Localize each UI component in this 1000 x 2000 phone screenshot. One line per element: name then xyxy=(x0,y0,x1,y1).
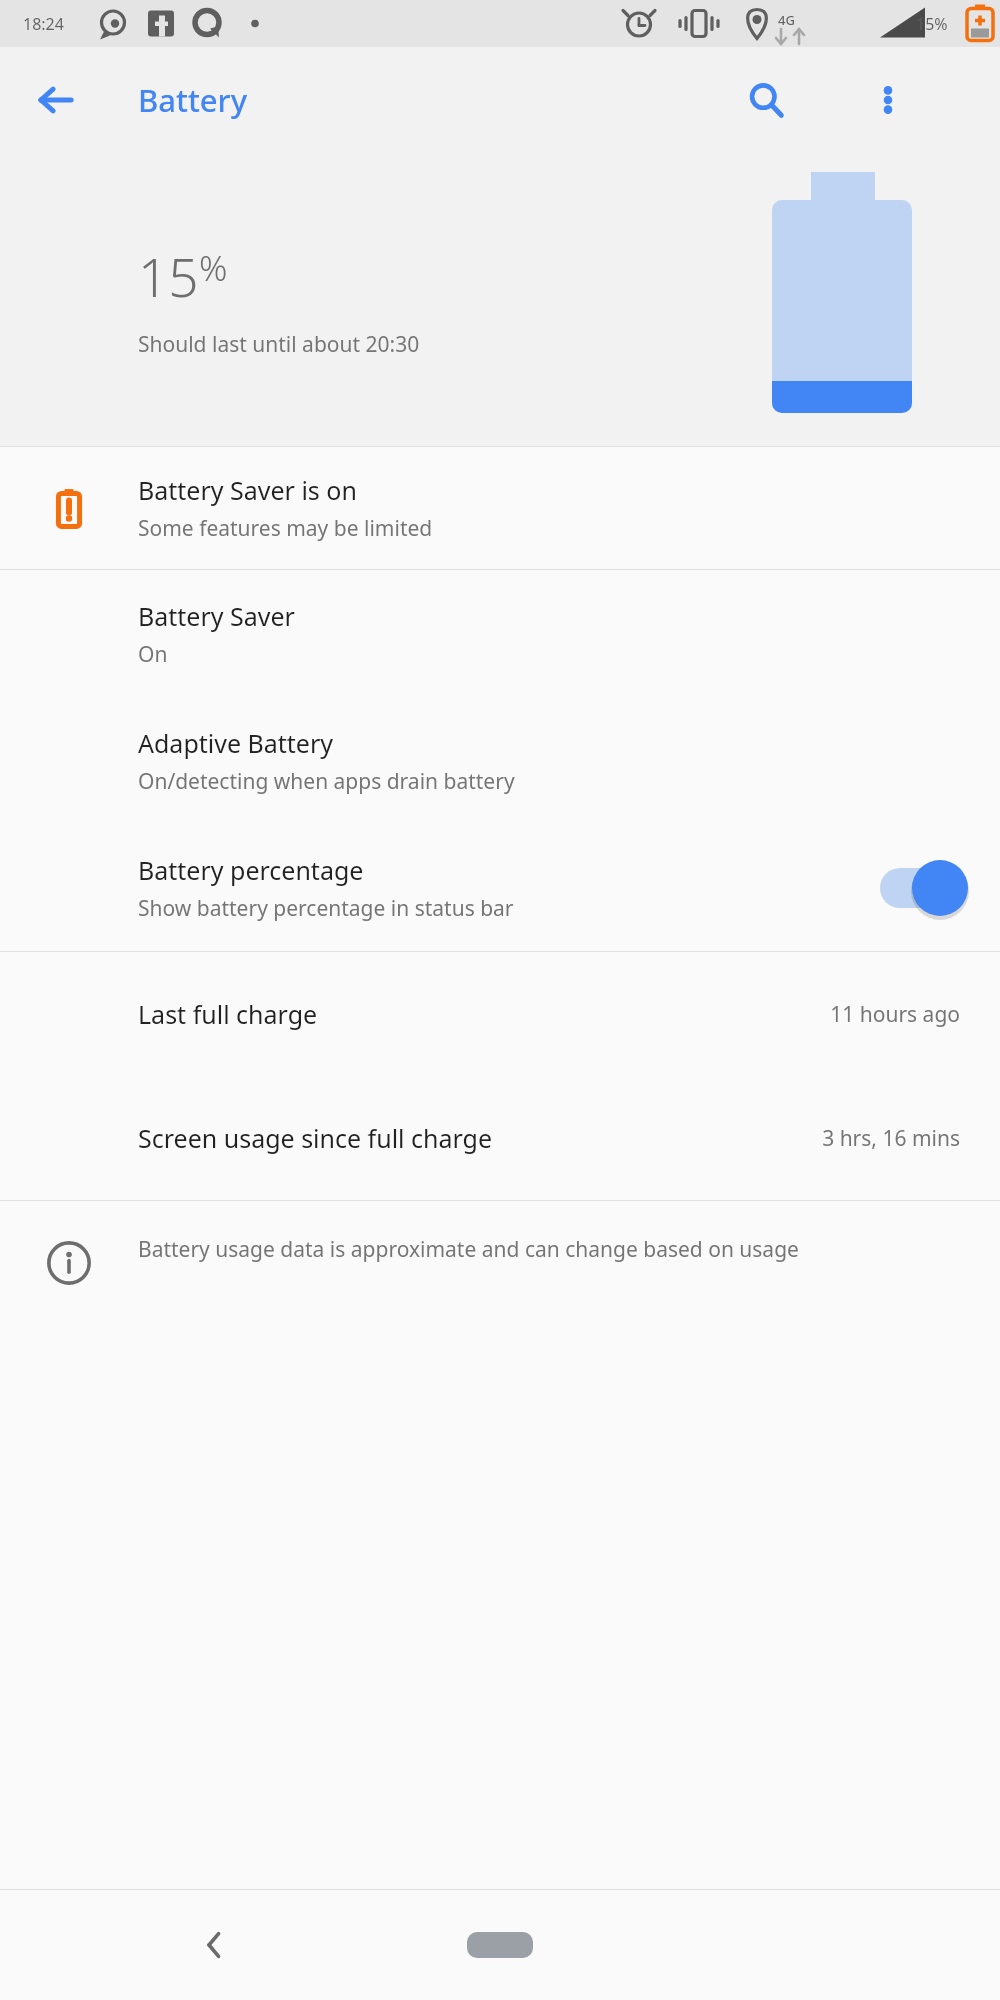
staticText: Battery Saver is on xyxy=(138,473,357,507)
button[interactable]: Battery percentage xyxy=(0,824,1000,951)
button[interactable]: Back xyxy=(175,1905,255,1985)
button[interactable]: Back xyxy=(22,66,90,134)
staticText: % xyxy=(199,244,228,292)
button[interactable]: Last full charge xyxy=(0,952,1000,1076)
staticText: Some features may be limited xyxy=(138,514,433,543)
staticText: 3 hrs, 16 mins xyxy=(822,1124,960,1153)
staticText: Battery percentage xyxy=(138,853,364,887)
staticText: 15% xyxy=(916,13,948,35)
button[interactable]: Screen usage since full charge xyxy=(0,1076,1000,1200)
staticText: Show battery percentage in status bar xyxy=(138,894,514,923)
staticText: 15 xyxy=(138,240,199,312)
button[interactable]: Search xyxy=(732,66,800,134)
staticText: Battery usage data is approximate and ca… xyxy=(138,1235,799,1264)
staticText: 11 hours ago xyxy=(830,1000,960,1029)
staticText: Last full charge xyxy=(138,997,830,1031)
staticText: Screen usage since full charge xyxy=(138,1121,822,1155)
button[interactable]: Battery Saver is on xyxy=(0,447,1000,569)
staticText: On xyxy=(138,640,168,669)
staticText: On/detecting when apps drain battery xyxy=(138,767,515,796)
staticText: Should last until about 20:30 xyxy=(138,330,420,359)
button[interactable]: Adaptive Battery xyxy=(0,697,1000,824)
staticText: 18:24 xyxy=(23,13,64,35)
staticText: Battery xyxy=(138,79,248,121)
staticText: Battery Saver xyxy=(138,599,295,633)
button[interactable]: More options xyxy=(854,66,922,134)
staticText: 4G xyxy=(778,11,795,29)
staticText: Adaptive Battery xyxy=(138,726,334,760)
button[interactable]: Battery Saver xyxy=(0,570,1000,697)
button[interactable]: Home xyxy=(445,1918,555,1972)
